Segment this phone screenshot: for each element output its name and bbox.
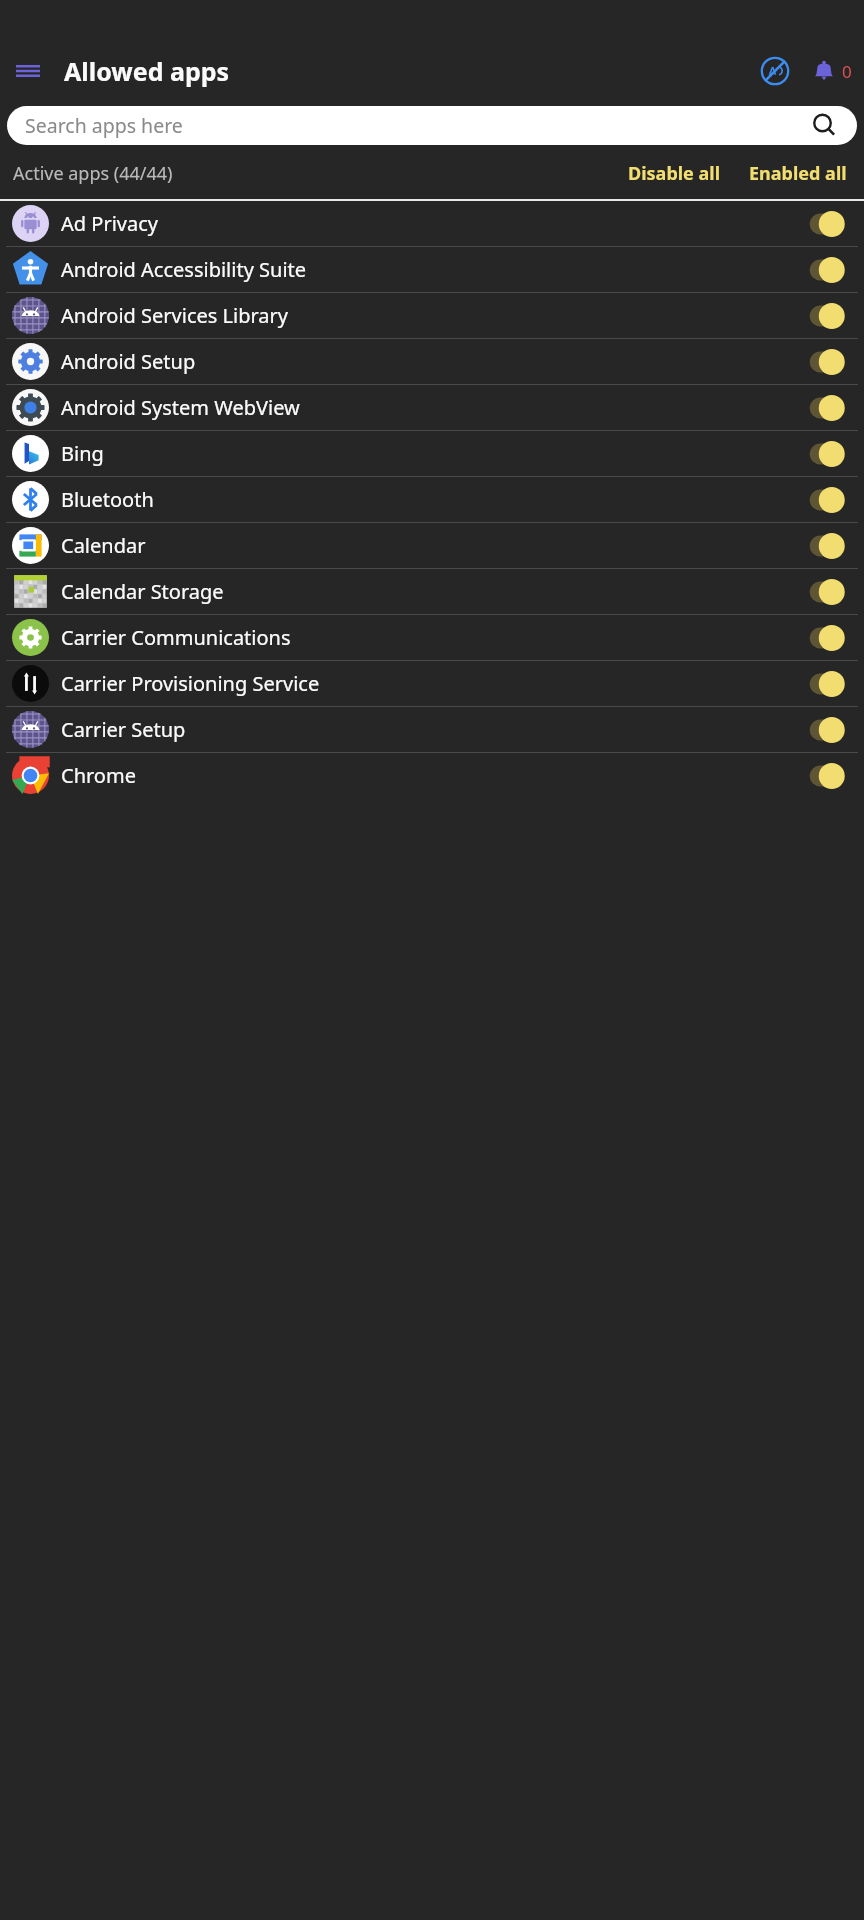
button[interactable]: Calendar [0,523,864,568]
button[interactable]: Toggle Carrier Communications [806,625,846,651]
button[interactable]: Search apps here [7,106,857,145]
button[interactable]: Toggle Carrier Provisioning Service [806,671,846,697]
staticText: Android Setup [61,348,196,375]
button[interactable]: Toggle Android System WebView [806,395,846,421]
staticText: Bluetooth [61,486,154,513]
staticText: Android System WebView [61,394,300,421]
staticText: Bing [61,440,104,467]
staticText: Carrier Communications [61,624,291,651]
staticText: Carrier Provisioning Service [61,670,320,697]
staticText: Calendar Storage [61,578,224,605]
button[interactable]: Toggle Bing [806,441,846,467]
button[interactable]: Toggle Android Setup [806,349,846,375]
button[interactable]: Android Services Library [0,293,864,338]
button[interactable]: Android Setup [0,339,864,384]
button[interactable]: Bluetooth [0,477,864,522]
button[interactable]: Calendar Storage [0,569,864,614]
staticText: Active apps (44/44) [13,161,173,186]
button[interactable]: Bing [0,431,864,476]
staticText: Enabled all [749,161,847,186]
staticText: Ad Privacy [61,210,158,237]
staticText: Chrome [61,762,136,789]
button[interactable]: Toggle Chrome [806,763,846,789]
button[interactable]: Block ads [753,49,797,93]
staticText: Android Accessibility Suite [61,256,307,283]
button[interactable]: Toggle Calendar Storage [806,579,846,605]
button[interactable]: Chrome [0,753,864,798]
button[interactable]: Notifications [807,58,856,84]
button[interactable]: Carrier Setup [0,707,864,752]
button[interactable]: Toggle Carrier Setup [806,717,846,743]
staticText: Calendar [61,532,146,559]
button[interactable]: Android Accessibility Suite [0,247,864,292]
button[interactable]: Toggle Calendar [806,533,846,559]
button[interactable]: Toggle Android Accessibility Suite [806,257,846,283]
button[interactable]: Ad Privacy [0,201,864,246]
staticText: Search apps here [25,112,183,139]
button[interactable]: Disable all [624,159,725,188]
button[interactable]: Enabled all [745,159,851,188]
staticText: 0 [842,60,852,83]
button[interactable]: Android System WebView [0,385,864,430]
staticText: Android Services Library [61,302,289,329]
button[interactable]: Menu [8,51,48,91]
button[interactable]: Carrier Communications [0,615,864,660]
staticText: Disable all [628,161,721,186]
button[interactable]: Carrier Provisioning Service [0,661,864,706]
staticText: Carrier Setup [61,716,186,743]
button[interactable]: Toggle Android Services Library [806,303,846,329]
button[interactable]: Toggle Ad Privacy [806,211,846,237]
staticText: Allowed apps [64,54,230,88]
button[interactable]: Toggle Bluetooth [806,487,846,513]
